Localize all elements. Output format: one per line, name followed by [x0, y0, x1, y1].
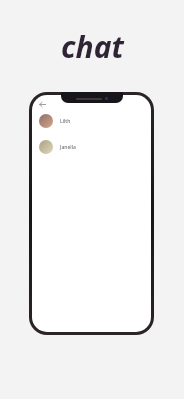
staticText: chat [61, 26, 124, 67]
button[interactable]: Back [36, 98, 48, 110]
button[interactable]: Lilth [32, 112, 151, 130]
staticText: Janella [60, 144, 76, 151]
button[interactable]: Janella [32, 138, 151, 156]
staticText: Lilth [60, 118, 71, 125]
